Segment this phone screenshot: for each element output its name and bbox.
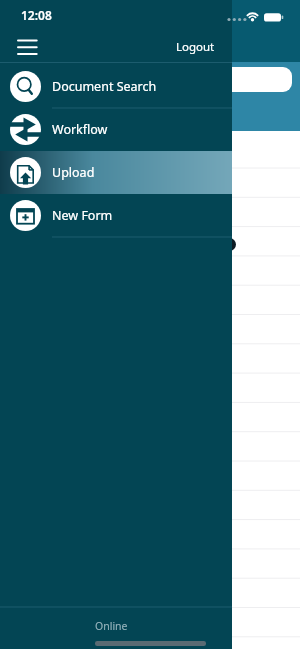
button[interactable]: New Form xyxy=(0,194,232,237)
staticText: Upload xyxy=(52,164,95,181)
button[interactable]: Workflow xyxy=(0,108,232,151)
staticText: Document Search xyxy=(52,78,157,95)
staticText: Logout xyxy=(176,39,215,55)
button[interactable]: Logout xyxy=(150,34,215,60)
button[interactable]: Upload xyxy=(0,151,232,194)
staticText: Workflow xyxy=(52,121,108,138)
button[interactable] xyxy=(8,67,292,92)
staticText: Online xyxy=(95,619,128,633)
staticText: New Form xyxy=(52,207,113,224)
staticText: 12:08 xyxy=(21,7,52,23)
button[interactable]: Document Search xyxy=(0,65,232,108)
button[interactable] xyxy=(14,34,42,58)
